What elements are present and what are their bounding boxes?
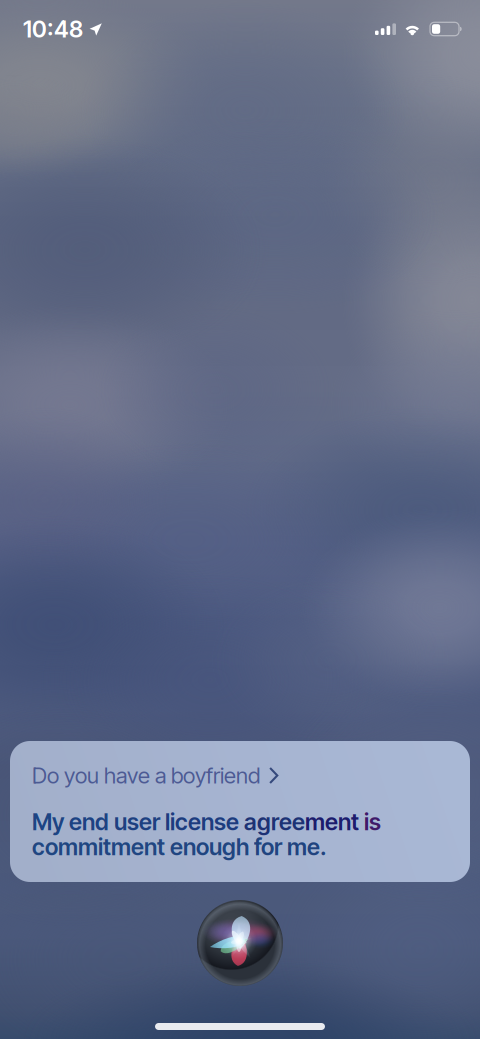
staticText: enough: [170, 833, 254, 861]
button[interactable]: Do you have a boyfriend: [32, 762, 452, 789]
staticText: license: [165, 808, 244, 836]
staticText: My: [32, 808, 69, 836]
staticText: commitment: [32, 833, 170, 861]
staticText: user: [114, 808, 165, 836]
staticText: Do you have a boyfriend: [32, 762, 260, 789]
staticText: agree: [244, 808, 305, 836]
staticText: end: [69, 808, 114, 836]
staticText: for: [254, 833, 287, 861]
staticText: is: [364, 808, 381, 836]
staticText: ment: [305, 808, 364, 836]
staticText: 10:48: [23, 15, 83, 43]
staticText: me.: [287, 833, 327, 861]
